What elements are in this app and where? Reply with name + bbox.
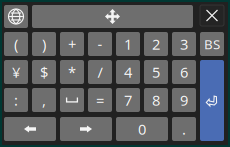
button[interactable]: Enter [200, 60, 224, 141]
button[interactable]: ( [4, 32, 28, 56]
staticText: 3 [180, 34, 188, 54]
button[interactable]: Cursor right [60, 117, 112, 141]
button[interactable]: - [88, 32, 112, 56]
button[interactable]: , [32, 88, 56, 112]
button[interactable]: 2 [144, 32, 168, 56]
button[interactable]: : [4, 88, 28, 112]
button[interactable]: / [88, 60, 112, 84]
button[interactable]: + [60, 32, 84, 56]
staticText: / [97, 62, 102, 82]
button[interactable]: = [88, 88, 112, 112]
button[interactable]: Move keyboard [32, 5, 193, 28]
staticText: 7 [124, 90, 132, 110]
button[interactable]: 8 [144, 88, 168, 112]
staticText: ¥ [12, 62, 20, 82]
button[interactable]: 6 [172, 60, 196, 84]
button[interactable]: ) [32, 32, 56, 56]
staticText: $ [40, 62, 48, 82]
staticText: 6 [180, 62, 188, 82]
button[interactable]: 9 [172, 88, 196, 112]
staticText: + [68, 34, 76, 54]
button[interactable]: * [60, 60, 84, 84]
button[interactable]: Input language [4, 5, 28, 28]
button[interactable]: $ [32, 60, 56, 84]
staticText: 1 [124, 34, 132, 54]
staticText: . [182, 119, 186, 139]
staticText: * [68, 62, 76, 82]
button[interactable]: Cursor left [4, 117, 56, 141]
button[interactable]: 7 [116, 88, 140, 112]
staticText: 4 [124, 62, 132, 82]
button[interactable]: 0 [116, 117, 168, 141]
staticText: = [96, 90, 104, 110]
button[interactable]: 3 [172, 32, 196, 56]
staticText: ) [42, 34, 46, 54]
staticText: 0 [138, 119, 146, 139]
staticText: , [42, 90, 46, 110]
button[interactable]: 4 [116, 60, 140, 84]
staticText: 8 [152, 90, 160, 110]
button[interactable]: Close keyboard [200, 5, 224, 26]
staticText: : [14, 90, 18, 110]
staticText: 5 [152, 62, 160, 82]
button[interactable]: BS [200, 32, 224, 56]
staticText: ( [14, 34, 18, 54]
button[interactable]: Space [60, 88, 84, 112]
button[interactable]: . [172, 117, 196, 141]
button[interactable]: 5 [144, 60, 168, 84]
staticText: 2 [152, 34, 160, 54]
button[interactable]: 1 [116, 32, 140, 56]
staticText: 9 [180, 90, 188, 110]
staticText: BS [204, 35, 220, 53]
button[interactable]: ¥ [4, 60, 28, 84]
staticText: - [97, 34, 102, 54]
